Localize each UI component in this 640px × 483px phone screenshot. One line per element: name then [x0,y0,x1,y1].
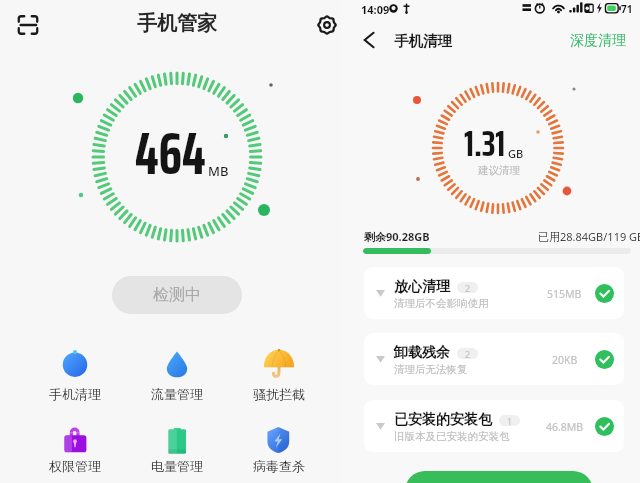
staticText: 手机管家 [137,11,217,36]
staticText: 1 [507,415,513,426]
staticText: 手机清理 [49,386,101,402]
staticText: 旧版本及已安装的安装包 [394,430,510,443]
button[interactable]: 电量管理 [141,422,213,474]
staticText: 流量管理 [151,386,203,402]
staticText: 病毒查杀 [253,458,305,474]
staticText: 20KB [552,353,578,367]
staticText: 放心清理 [394,278,450,296]
staticText: MB [208,162,229,180]
staticText: 手机清理 [394,32,452,50]
button[interactable]: 卸载残余 [364,333,624,385]
staticText: 已安装的安装包 [394,411,492,429]
staticText: 剩余90.28GB [364,229,430,244]
staticText: 1.31 [464,114,506,172]
button[interactable]: 检测中 [112,276,242,314]
staticText: 清理后无法恢复 [394,363,468,376]
button[interactable]: 已安装的安装包 [364,400,624,452]
staticText: 515MB [547,287,582,301]
staticText: 清理后不会影响使用 [394,297,489,310]
staticText: 46.8MB [546,420,584,434]
staticText: 2 [465,348,471,359]
button[interactable]: 放心清理 [364,267,624,319]
staticText: 2 [465,282,471,293]
staticText: 权限管理 [49,458,101,474]
button[interactable]: 一键清理 [405,471,593,483]
staticText: 检测中 [153,285,201,305]
button[interactable]: Scan [12,9,43,40]
button[interactable]: 骚扰拦截 [243,346,315,402]
button[interactable]: Back [356,26,384,54]
button[interactable]: 权限管理 [39,422,111,474]
staticText: 卸载残余 [394,344,450,362]
staticText: 电量管理 [151,458,203,474]
button[interactable]: Settings [311,9,342,40]
staticText: 骚扰拦截 [253,386,305,402]
button[interactable]: 深度清理 [570,32,626,50]
staticText: 14:09 [361,2,390,17]
staticText: 464 [135,106,206,200]
staticText: 深度清理 [570,32,626,50]
staticText: 71 [621,2,633,16]
staticText: 建议清理 [478,164,520,177]
button[interactable]: 病毒查杀 [243,422,315,474]
staticText: 已用28.84GB/119 GB [538,229,640,244]
staticText: GB [508,146,524,161]
button[interactable]: 流量管理 [141,346,213,402]
button[interactable]: 手机清理 [39,346,111,402]
